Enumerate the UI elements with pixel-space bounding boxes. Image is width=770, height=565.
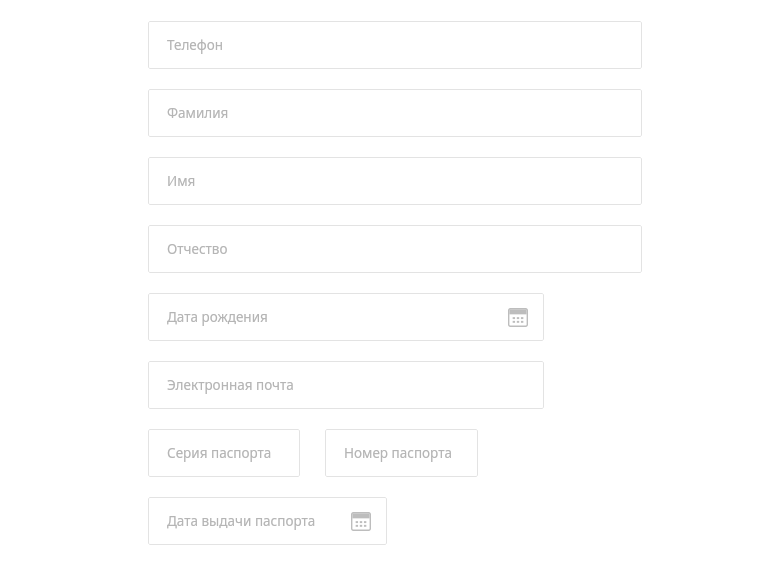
button[interactable]: Телефон	[148, 21, 642, 69]
button[interactable]: Фамилия	[148, 89, 642, 137]
button[interactable]: Дата выдачи паспорта	[148, 497, 387, 545]
staticText: Номер паспорта	[344, 444, 452, 462]
staticText: Отчество	[167, 240, 228, 258]
staticText: Имя	[167, 172, 196, 190]
staticText: Дата рождения	[167, 308, 268, 326]
button[interactable]: Отчество	[148, 225, 642, 273]
staticText: Фамилия	[167, 104, 229, 122]
button[interactable]: Имя	[148, 157, 642, 205]
staticText: Электронная почта	[167, 376, 294, 394]
button[interactable]: Серия паспорта	[148, 429, 300, 477]
staticText: Серия паспорта	[167, 444, 272, 462]
button[interactable]: Выбрать дату	[505, 304, 531, 330]
staticText: Телефон	[167, 36, 224, 54]
staticText: Дата выдачи паспорта	[167, 512, 316, 530]
button[interactable]: Номер паспорта	[325, 429, 478, 477]
button[interactable]: Дата рождения	[148, 293, 544, 341]
button[interactable]: Выбрать дату	[348, 508, 374, 534]
button[interactable]: Электронная почта	[148, 361, 544, 409]
